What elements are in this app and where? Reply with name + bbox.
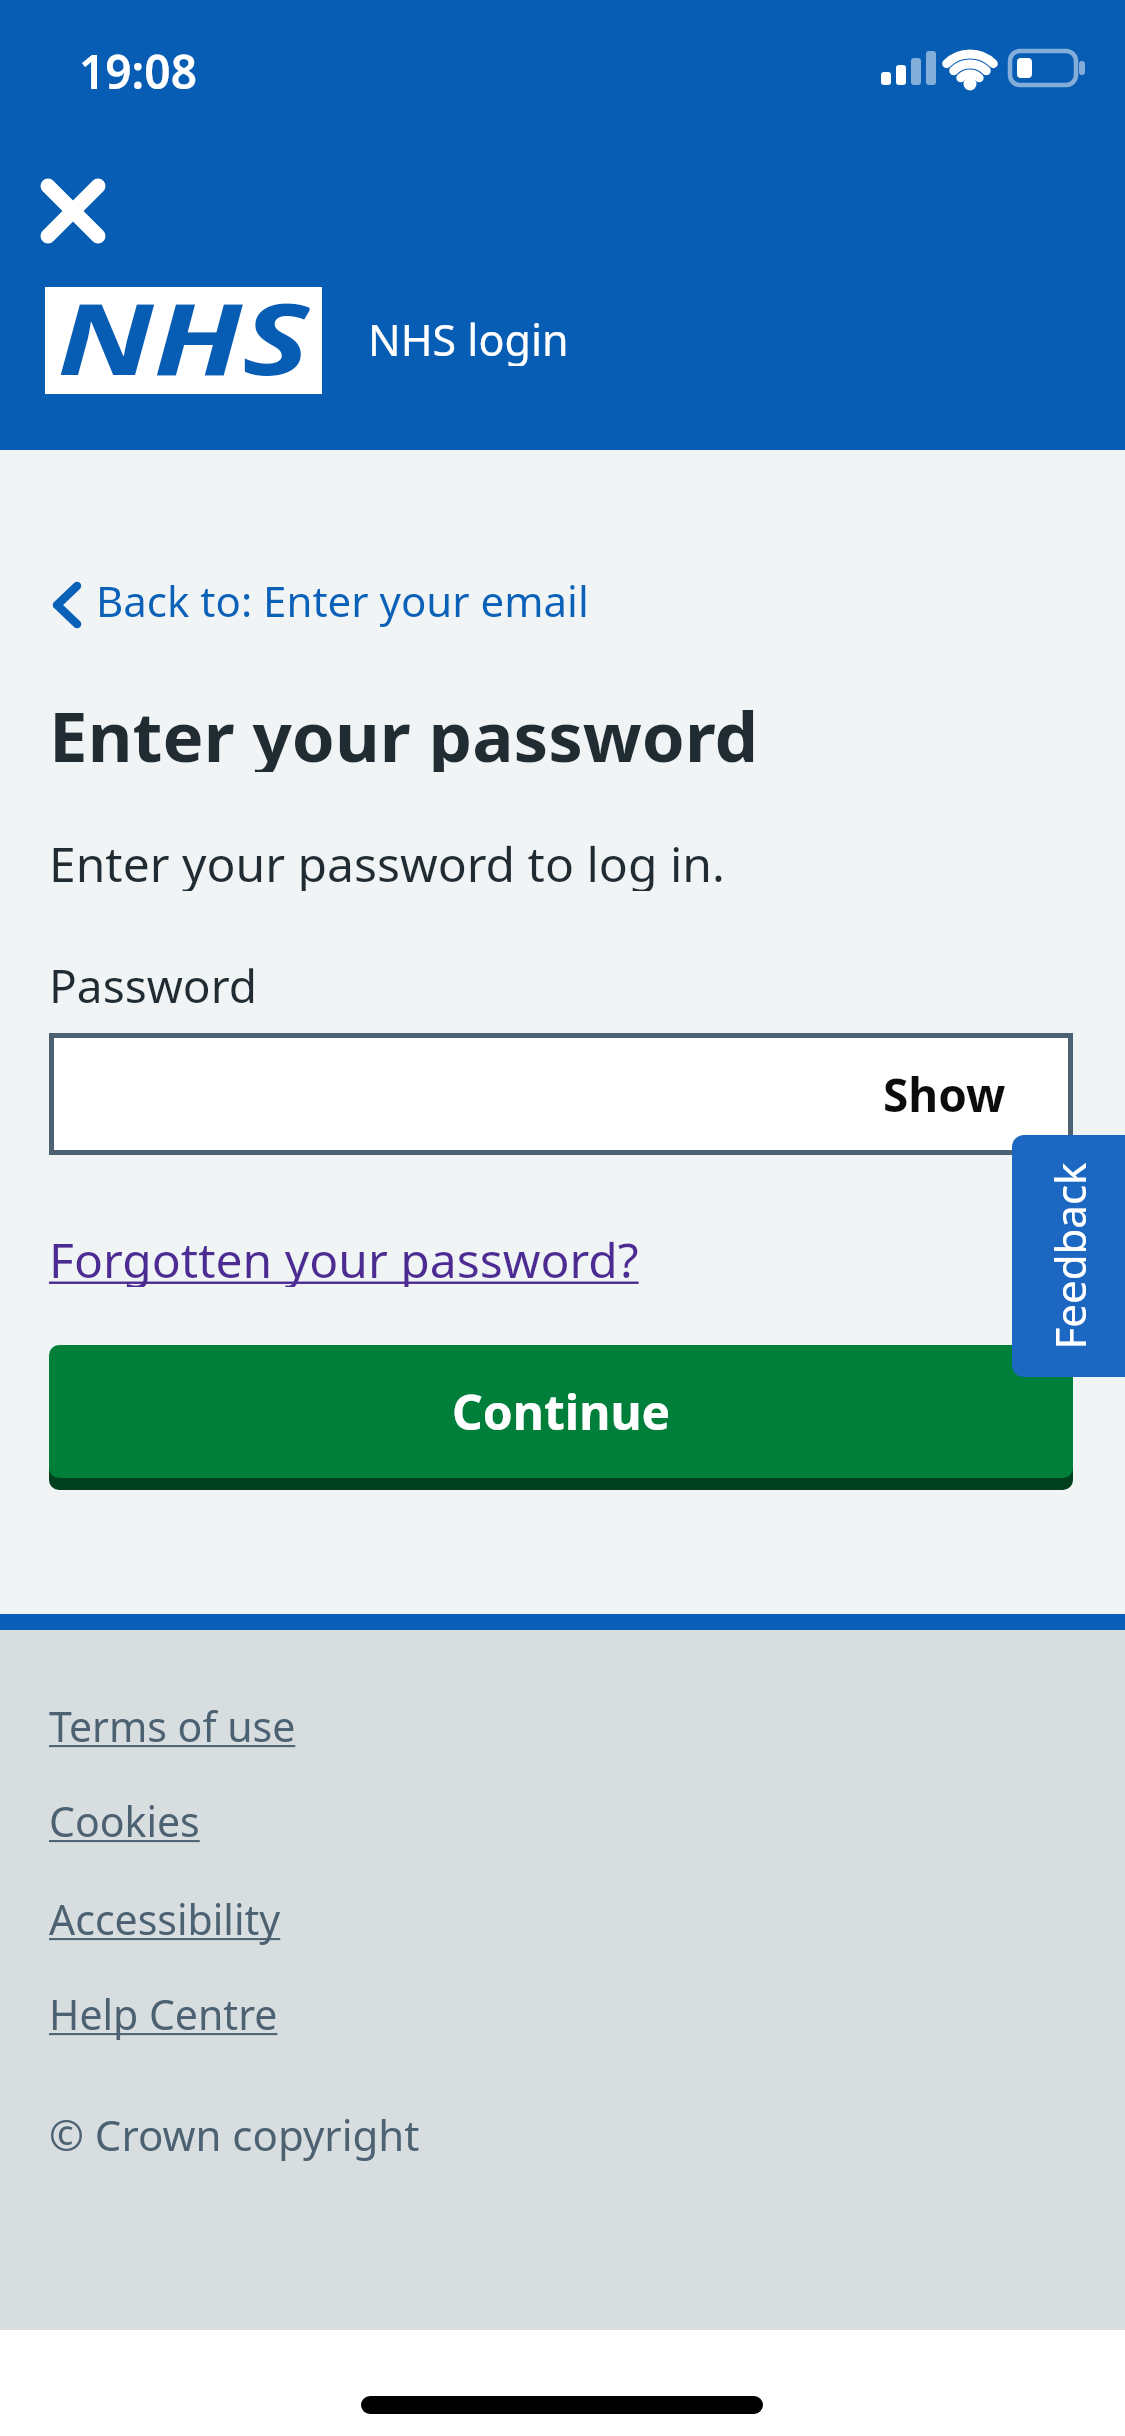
button[interactable]: Show [883,1063,1006,1126]
staticText: Accessibility [49,1891,281,1947]
staticText: Forgotten your password? [49,1227,639,1287]
button[interactable]: Continue [49,1345,1073,1478]
staticText: Terms of use [49,1698,296,1754]
staticText: Feedback [1040,1162,1097,1349]
staticText: Help Centre [49,1986,278,2042]
staticText: Continue [452,1379,671,1444]
staticText: © Crown copyright [49,2106,420,2162]
button[interactable]: Back to: Enter your email [45,566,605,634]
button[interactable]: Feedback [1012,1135,1125,1377]
button[interactable]: Help Centre [49,1986,278,2042]
staticText: NHS [57,269,309,380]
staticText: Back to: Enter your email [96,572,589,629]
button[interactable]: Accessibility [49,1891,281,1947]
staticText: Password [49,954,258,1010]
button[interactable]: Terms of use [49,1698,296,1754]
staticText: Cookies [49,1793,200,1849]
staticText: Show [883,1063,1006,1126]
staticText: NHS login [368,310,569,366]
staticText: Enter your password to log in. [49,831,725,891]
button[interactable] [35,173,111,249]
button[interactable]: Cookies [49,1793,200,1849]
button[interactable]: Forgotten your password? [49,1227,639,1287]
staticText: Enter your password [49,688,759,772]
staticText: 19:08 [79,40,197,96]
